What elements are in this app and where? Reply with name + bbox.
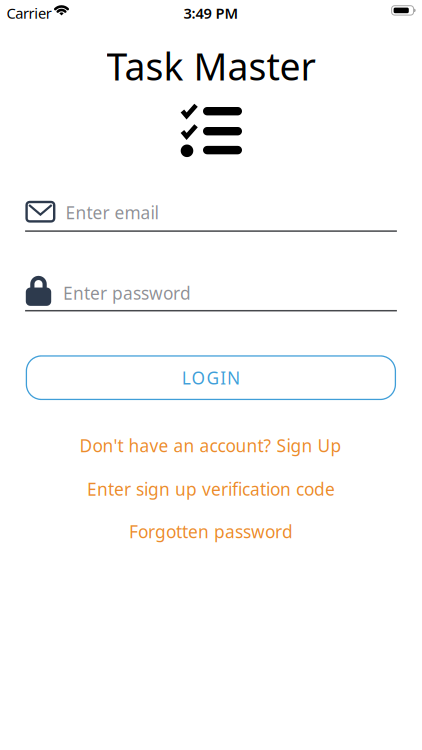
staticText: Don't have an account? Sign Up [79,434,341,457]
button[interactable]: Forgotten password [129,520,293,543]
staticText: LOGIN [182,366,240,389]
staticText: Forgotten password [129,520,293,543]
staticText: Enter password [63,281,191,304]
staticText: Carrier [6,3,52,23]
staticText: 3:49 PM [183,3,238,23]
staticText: Enter sign up verification code [87,477,335,500]
button[interactable]: LOGIN [26,356,395,399]
button[interactable]: Enter sign up verification code [87,477,335,500]
staticText: Enter email [65,201,158,224]
button[interactable]: Don't have an account? Sign Up [79,434,341,457]
staticText: Task Master [106,41,315,91]
